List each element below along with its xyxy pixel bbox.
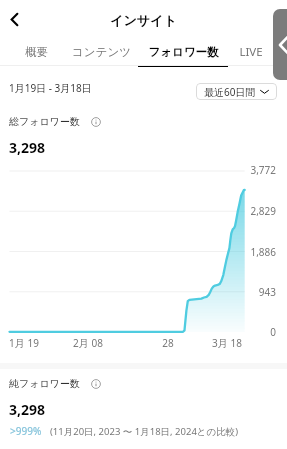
staticText: 純フォロワー数 — [9, 377, 80, 390]
staticText: LIVE — [239, 44, 263, 60]
button[interactable]: Back — [0, 3, 30, 35]
button[interactable]: フォロワー数 — [138, 40, 228, 67]
staticText: 概要 — [25, 45, 48, 59]
staticText: 0 — [236, 325, 276, 339]
staticText: 2月 08 — [63, 336, 113, 350]
staticText: 3,298 — [9, 138, 46, 157]
staticText: 1月 19 — [0, 336, 49, 350]
staticText: 28 — [143, 336, 193, 350]
staticText: 3月 18 — [202, 336, 252, 350]
staticText: コンテンツ — [72, 45, 131, 59]
staticText: 943 — [236, 285, 276, 299]
staticText: インサイト — [0, 12, 287, 28]
staticText: 総フォロワー数 — [9, 115, 80, 128]
staticText: 最近60日間 — [204, 85, 256, 99]
button[interactable]: 概要 — [6, 40, 66, 67]
staticText: >999% — [10, 424, 42, 438]
staticText: 2,829 — [236, 204, 276, 218]
staticText: フォロワー数 — [148, 45, 219, 59]
button[interactable]: コンテンツ — [62, 40, 140, 67]
staticText: 3,298 — [9, 400, 46, 419]
button[interactable]: Open drawer — [273, 9, 287, 80]
staticText: 3,772 — [236, 163, 276, 177]
staticText: (11月20日, 2023 〜 1月18日, 2024との比較) — [50, 425, 239, 438]
staticText: 1月19日 - 3月18日 — [9, 81, 92, 95]
staticText: 1,886 — [236, 245, 276, 259]
button[interactable]: 最近60日間 — [196, 83, 277, 100]
button[interactable]: LIVE — [225, 40, 277, 67]
